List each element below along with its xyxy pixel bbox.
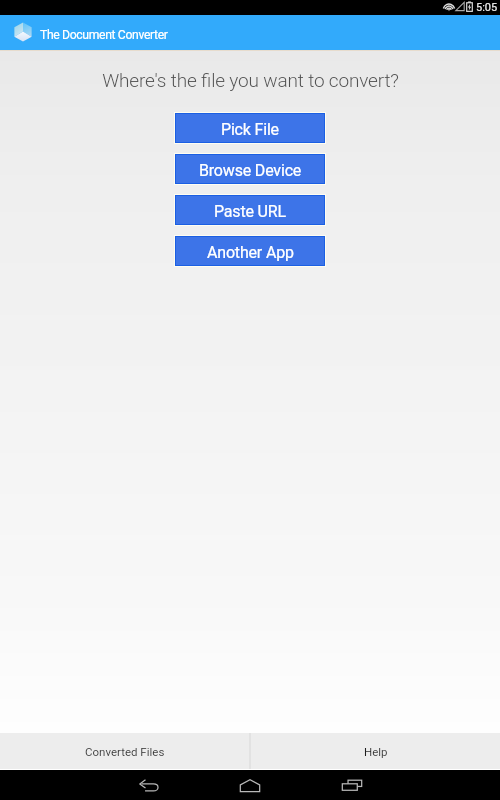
button[interactable]: Browse Device (176, 155, 324, 183)
button[interactable]: Paste URL (176, 196, 324, 224)
button[interactable]: Converted Files (0, 733, 249, 769)
staticText: 5:05 (476, 1, 498, 14)
staticText: Converted Files (85, 745, 165, 758)
button[interactable]: Recent apps (301, 770, 402, 800)
staticText: Browse Device (199, 161, 302, 180)
button[interactable]: Help (251, 733, 500, 769)
staticText: Pick File (221, 120, 279, 139)
staticText: Where's the file you want to convert? (102, 69, 399, 91)
button[interactable]: Back (98, 770, 199, 800)
button[interactable]: Pick File (176, 114, 324, 142)
button[interactable]: Another App (176, 237, 324, 265)
staticText: Another App (207, 243, 294, 262)
staticText: Paste URL (214, 202, 286, 221)
button[interactable]: Home (199, 770, 301, 800)
staticText: Help (364, 745, 388, 758)
staticText: The Document Converter (40, 28, 168, 42)
